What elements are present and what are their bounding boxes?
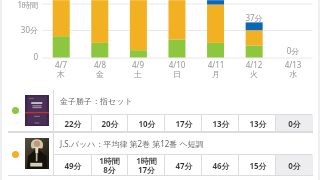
button[interactable]: 1時間 8分 [91, 155, 128, 175]
staticText: 金子勝子：指セット [60, 96, 313, 106]
staticText: 13分 [249, 118, 267, 129]
staticText: 10分 [138, 118, 156, 129]
button[interactable]: 47分 [165, 155, 202, 175]
staticText: 1時間 8分 [99, 155, 120, 175]
staticText: 1時間 17分 [136, 155, 157, 175]
button[interactable]: 0分 [276, 155, 313, 175]
staticText: 月 [194, 69, 238, 79]
button[interactable]: 49分 [54, 155, 91, 175]
button[interactable]: 10分 [128, 115, 165, 132]
staticText: 46分 [212, 160, 230, 171]
staticText: 4/10 [155, 59, 199, 70]
staticText: 0分 [288, 118, 301, 129]
staticText: 水 [271, 69, 315, 79]
staticText: 13分 [212, 118, 230, 129]
button[interactable]: 22分 [54, 115, 91, 132]
staticText: 4/12 [232, 59, 276, 70]
staticText: 0分 [273, 45, 313, 56]
staticText: 4/8 [78, 59, 122, 70]
button[interactable]: 13分 [202, 115, 239, 132]
staticText: 木 [39, 69, 83, 79]
staticText: 17分 [175, 118, 193, 129]
staticText: 火 [232, 69, 276, 79]
staticText: 日 [155, 69, 199, 79]
staticText: 15分 [249, 160, 267, 171]
staticText: 1時間 [0, 0, 38, 10]
staticText: 4/7 [39, 59, 83, 70]
staticText: 37分 [234, 12, 274, 23]
staticText: 4/9 [116, 59, 160, 70]
button[interactable]: 金子勝子：指セット [8, 90, 313, 131]
staticText: 0分 [288, 160, 301, 171]
staticText: 47分 [175, 160, 193, 171]
staticText: 49分 [64, 160, 82, 171]
staticText: 20分 [101, 118, 119, 129]
staticText: 土 [116, 69, 160, 79]
button[interactable]: 15分 [239, 155, 276, 175]
staticText: J.S.バッハ：平均律 第2巻 第12番 ヘ短調 [60, 138, 313, 149]
staticText: 0 [0, 51, 38, 62]
staticText: 30分 [0, 24, 38, 35]
button[interactable]: 20分 [91, 115, 128, 132]
button[interactable]: 46分 [202, 155, 239, 175]
button[interactable]: 17分 [165, 115, 202, 132]
button[interactable]: J.S.バッハ：平均律 第2巻 第12番 ヘ短調 [8, 133, 313, 175]
button[interactable]: 13分 [239, 115, 276, 132]
staticText: 4/11 [194, 59, 238, 70]
button[interactable]: 0分 [276, 115, 313, 132]
staticText: 4/13 [271, 59, 315, 70]
staticText: 金 [78, 69, 122, 79]
staticText: 22分 [64, 118, 82, 129]
button[interactable]: 1時間 17分 [128, 155, 165, 175]
